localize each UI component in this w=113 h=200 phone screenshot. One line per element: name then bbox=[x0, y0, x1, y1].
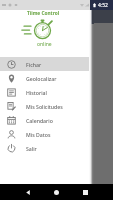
staticText: 4:52 bbox=[98, 2, 108, 9]
button[interactable]: Home bbox=[48, 184, 64, 200]
staticText: Mis Datos bbox=[26, 131, 51, 138]
staticText: Salir bbox=[26, 145, 37, 152]
staticText: Geolocalizar bbox=[26, 75, 57, 82]
staticText: Calendario bbox=[26, 117, 53, 124]
button[interactable]: Mis Datos bbox=[0, 127, 90, 141]
button[interactable]: Mis Solicitudes bbox=[0, 99, 90, 113]
button[interactable]: Geolocalizar bbox=[0, 71, 90, 85]
button[interactable]: Calendario bbox=[0, 113, 90, 127]
staticText: Fichar bbox=[26, 61, 42, 68]
button[interactable]: Recents bbox=[77, 184, 93, 200]
staticText: Mis Solicitudes bbox=[26, 103, 63, 110]
button[interactable]: Historial bbox=[0, 85, 90, 99]
staticText: Historial bbox=[26, 89, 47, 96]
button[interactable]: Back bbox=[20, 184, 36, 200]
staticText: Tiime Control bbox=[27, 10, 60, 17]
button[interactable]: Fichar bbox=[0, 57, 90, 71]
button[interactable]: Salir bbox=[0, 141, 90, 155]
staticText: online bbox=[37, 41, 52, 48]
